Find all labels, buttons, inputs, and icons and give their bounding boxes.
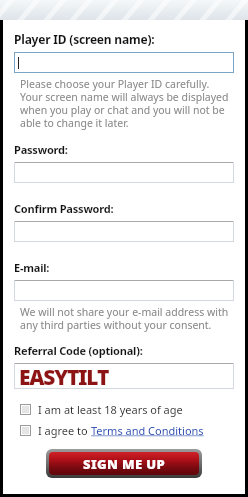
button[interactable]: EASYTILT — [14, 363, 234, 389]
button[interactable] — [14, 52, 234, 73]
staticText: E-mail: — [14, 260, 50, 275]
button[interactable] — [14, 162, 234, 183]
button[interactable]: I am at least 18 years of age — [14, 400, 234, 418]
button[interactable]: I agree to — [14, 421, 234, 439]
staticText: I am at least 18 years of age — [38, 402, 183, 417]
button[interactable]: Terms and Conditions — [91, 423, 204, 438]
staticText: Confirm Password: — [14, 201, 114, 216]
staticText: Please choose your Player ID carefully. … — [20, 77, 234, 130]
staticText: Password: — [14, 142, 68, 157]
button[interactable] — [14, 280, 234, 301]
staticText: I agree to — [38, 423, 91, 438]
staticText: SIGN ME UP — [83, 455, 166, 473]
button[interactable]: SIGN ME UP — [46, 449, 202, 478]
button[interactable] — [14, 221, 234, 242]
staticText: We will not share your e-mail address wi… — [20, 305, 234, 332]
staticText: EASYTILT — [19, 363, 109, 389]
staticText: Referral Code (optional): — [14, 343, 143, 358]
staticText: Player ID (screen name): — [14, 31, 155, 47]
